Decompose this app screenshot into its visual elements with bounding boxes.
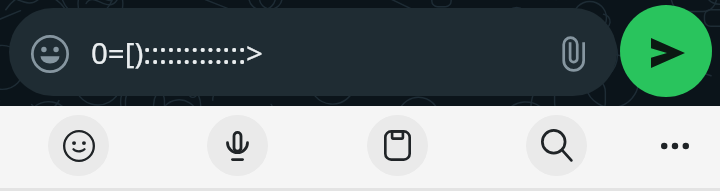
button[interactable]: Emoji [48,115,109,176]
button[interactable]: Search [526,115,587,176]
button[interactable]: Attach [551,30,595,74]
button[interactable]: Voice message [207,115,268,176]
button[interactable]: Emoji [29,31,71,73]
button[interactable]: Emoji [9,8,617,96]
button[interactable]: Send [620,5,712,97]
staticText: 0=[):::::::::::::> [91,32,263,72]
button[interactable]: More options [645,116,705,176]
button[interactable]: Stickers [367,115,428,176]
